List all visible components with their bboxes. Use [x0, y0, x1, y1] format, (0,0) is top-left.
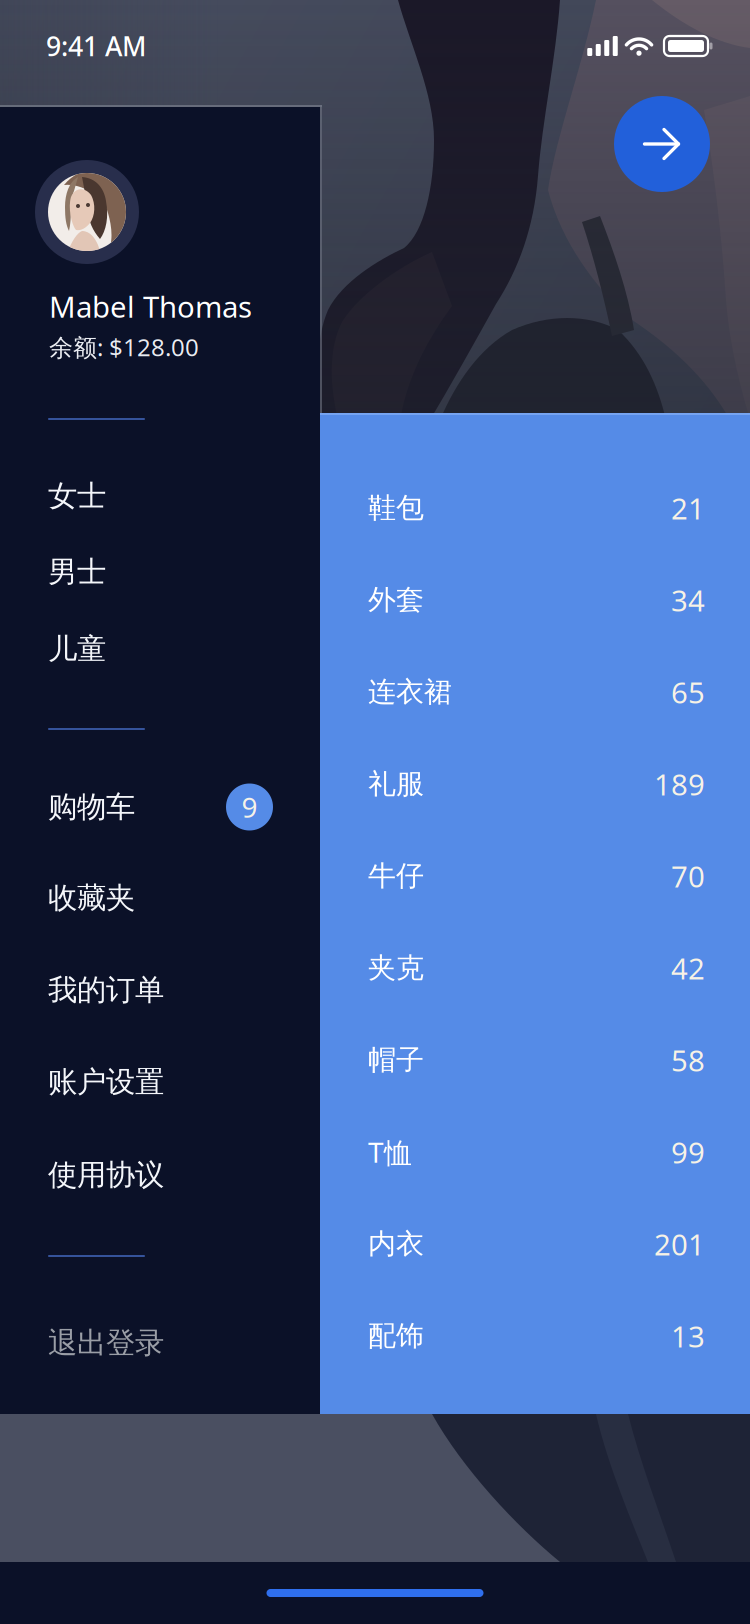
button[interactable]: 收藏夹	[0, 860, 320, 936]
button[interactable]: 退出登录	[0, 1305, 320, 1381]
staticText: 内衣	[368, 1227, 424, 1261]
button[interactable]: 购物车	[0, 769, 320, 845]
staticText: 189	[654, 764, 705, 803]
button[interactable]: 礼服	[320, 738, 750, 830]
staticText: 男士	[48, 554, 106, 590]
button[interactable]: 夹克	[320, 922, 750, 1014]
staticText: 连衣裙	[368, 675, 452, 709]
button[interactable]: 外套	[320, 554, 750, 646]
button[interactable]: 男士	[0, 534, 320, 610]
staticText: 外套	[368, 583, 424, 617]
staticText: T恤	[368, 1133, 412, 1171]
staticText: 201	[654, 1224, 705, 1263]
staticText: 58	[671, 1040, 705, 1079]
staticText: 配饰	[368, 1319, 424, 1353]
staticText: 9:41 AM	[46, 28, 146, 64]
staticText: 65	[671, 672, 705, 711]
button[interactable]: Continue	[614, 96, 710, 192]
staticText: 42	[671, 948, 705, 987]
staticText: 使用协议	[48, 1157, 164, 1193]
staticText: 帽子	[368, 1043, 424, 1077]
staticText: 夹克	[368, 951, 424, 985]
staticText: 13	[671, 1316, 705, 1355]
button[interactable]: 使用协议	[0, 1137, 320, 1213]
button[interactable]: 儿童	[0, 611, 320, 687]
staticText: 34	[671, 580, 705, 619]
staticText: 礼服	[368, 767, 424, 801]
staticText: 余额: $128.00	[49, 331, 199, 363]
button[interactable]: 配饰	[320, 1290, 750, 1382]
button[interactable]: 帽子	[320, 1014, 750, 1106]
staticText: 牛仔	[368, 859, 424, 893]
staticText: 9	[241, 788, 257, 826]
button[interactable]: 账户设置	[0, 1044, 320, 1120]
button[interactable]: 我的订单	[0, 952, 320, 1028]
button[interactable]: T恤	[320, 1106, 750, 1198]
staticText: 21	[671, 488, 705, 527]
button[interactable]: 连衣裙	[320, 646, 750, 738]
staticText: 儿童	[48, 631, 106, 667]
button[interactable]: 内衣	[320, 1198, 750, 1290]
staticText: Mabel Thomas	[49, 287, 252, 326]
staticText: 退出登录	[48, 1325, 164, 1361]
staticText: 账户设置	[48, 1064, 164, 1100]
staticText: 女士	[48, 478, 106, 514]
staticText: 收藏夹	[48, 880, 135, 916]
button[interactable]: 牛仔	[320, 830, 750, 922]
staticText: 99	[671, 1132, 705, 1171]
staticText: 鞋包	[368, 491, 424, 525]
staticText: 70	[671, 856, 705, 895]
staticText: 我的订单	[48, 972, 164, 1008]
staticText: 购物车	[48, 789, 135, 825]
button[interactable]: Mabel Thomas	[0, 107, 320, 377]
button[interactable]: 鞋包	[320, 462, 750, 554]
button[interactable]: 女士	[0, 458, 320, 534]
